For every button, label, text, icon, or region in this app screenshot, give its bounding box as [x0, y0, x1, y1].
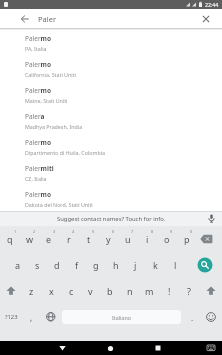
staticText: California, Stati Uniti — [25, 71, 76, 78]
button[interactable] — [201, 278, 221, 304]
button[interactable]: y — [98, 226, 118, 252]
button[interactable]: ! — [159, 278, 179, 304]
staticText: r — [67, 233, 71, 245]
staticText: Palermo — [25, 86, 52, 95]
staticText: 2 — [33, 229, 36, 234]
button[interactable] — [41, 304, 61, 330]
button[interactable]: d — [47, 252, 67, 278]
staticText: s — [35, 259, 40, 271]
staticText: Paler — [38, 14, 57, 24]
button[interactable]: Palermo — [0, 134, 222, 160]
button[interactable]: s — [27, 252, 47, 278]
staticText: h — [113, 259, 119, 271]
button[interactable]: n — [120, 278, 140, 304]
button[interactable]: Palermiti — [0, 160, 222, 186]
button[interactable]: m — [139, 278, 159, 304]
staticText: 5 — [92, 229, 95, 234]
staticText: k — [153, 259, 158, 271]
button[interactable]: ?123 — [1, 304, 21, 330]
button[interactable]: , — [21, 304, 41, 330]
button[interactable]: Palermo — [0, 30, 222, 56]
staticText: Palermo — [25, 190, 52, 199]
staticText: 0 — [190, 229, 193, 234]
staticText: ? — [187, 285, 191, 297]
staticText: y — [106, 233, 111, 245]
button[interactable]: b — [100, 278, 120, 304]
staticText: 4 — [72, 229, 75, 234]
staticText: g — [93, 259, 99, 271]
button[interactable]: x — [41, 278, 61, 304]
button[interactable]: f — [67, 252, 87, 278]
staticText: , — [30, 312, 33, 323]
staticText: p — [184, 233, 190, 245]
button[interactable]: z — [21, 278, 41, 304]
button[interactable]: l — [165, 252, 185, 278]
staticText: Italiano — [112, 314, 131, 321]
staticText: 22:44 — [205, 1, 219, 8]
button[interactable]: Italiano — [62, 310, 181, 324]
staticText: 9 — [170, 229, 173, 234]
button[interactable]: Palermo — [0, 186, 222, 212]
button[interactable] — [194, 254, 216, 276]
button[interactable]: t — [79, 226, 99, 252]
button[interactable] — [17, 11, 33, 27]
button[interactable]: i — [137, 226, 157, 252]
staticText: o — [164, 233, 170, 245]
button[interactable]: ? — [179, 278, 199, 304]
button[interactable]: r — [59, 226, 79, 252]
button[interactable]: q — [0, 226, 20, 252]
button[interactable]: j — [125, 252, 145, 278]
button[interactable]: u — [118, 226, 138, 252]
button[interactable] — [204, 341, 218, 355]
staticText: l — [174, 259, 177, 271]
staticText: Palermo — [25, 60, 52, 69]
button[interactable]: o — [157, 226, 177, 252]
button[interactable] — [150, 341, 166, 355]
button[interactable]: Palermo — [0, 56, 222, 82]
button[interactable] — [206, 213, 217, 224]
button[interactable]: a — [8, 252, 28, 278]
staticText: w — [26, 233, 34, 245]
staticText: t — [87, 233, 91, 245]
button[interactable] — [198, 11, 213, 26]
staticText: Palera — [25, 112, 45, 121]
staticText: v — [88, 285, 93, 297]
button[interactable] — [102, 341, 118, 355]
staticText: u — [125, 233, 131, 245]
staticText: a — [15, 259, 21, 271]
staticText: 8 — [151, 229, 154, 234]
staticText: 6 — [112, 229, 115, 234]
staticText: x — [49, 285, 54, 297]
button[interactable] — [54, 341, 70, 355]
button[interactable]: k — [145, 252, 165, 278]
staticText: CZ, Italia — [25, 175, 47, 182]
staticText: c — [69, 285, 74, 297]
button[interactable]: g — [86, 252, 106, 278]
button[interactable]: h — [106, 252, 126, 278]
staticText: Madhya Pradesh, India — [25, 123, 83, 130]
button[interactable]: c — [61, 278, 81, 304]
button[interactable]: w — [20, 226, 40, 252]
staticText: d — [54, 259, 60, 271]
button[interactable]: e — [39, 226, 59, 252]
staticText: Maine, Stati Uniti — [25, 97, 68, 104]
staticText: Dakota del Nord, Stati Uniti — [25, 201, 93, 208]
button[interactable]: p — [177, 226, 197, 252]
staticText: 1 — [14, 229, 17, 234]
staticText: Palermo — [25, 138, 52, 147]
button[interactable] — [196, 226, 216, 252]
staticText: Dipartimento di Huila, Colombia — [25, 149, 106, 156]
button[interactable] — [1, 278, 21, 304]
staticText: ?123 — [5, 313, 18, 321]
staticText: 7 — [131, 229, 134, 234]
button[interactable]: . — [185, 304, 199, 330]
staticText: m — [145, 285, 154, 297]
staticText: e — [46, 233, 52, 245]
button[interactable]: v — [80, 278, 100, 304]
button[interactable]: Palera — [0, 108, 222, 134]
button[interactable] — [201, 304, 221, 330]
button[interactable]: Palermo — [0, 82, 222, 108]
staticText: z — [29, 285, 34, 297]
staticText: Palermiti — [25, 164, 54, 173]
staticText: n — [127, 285, 133, 297]
